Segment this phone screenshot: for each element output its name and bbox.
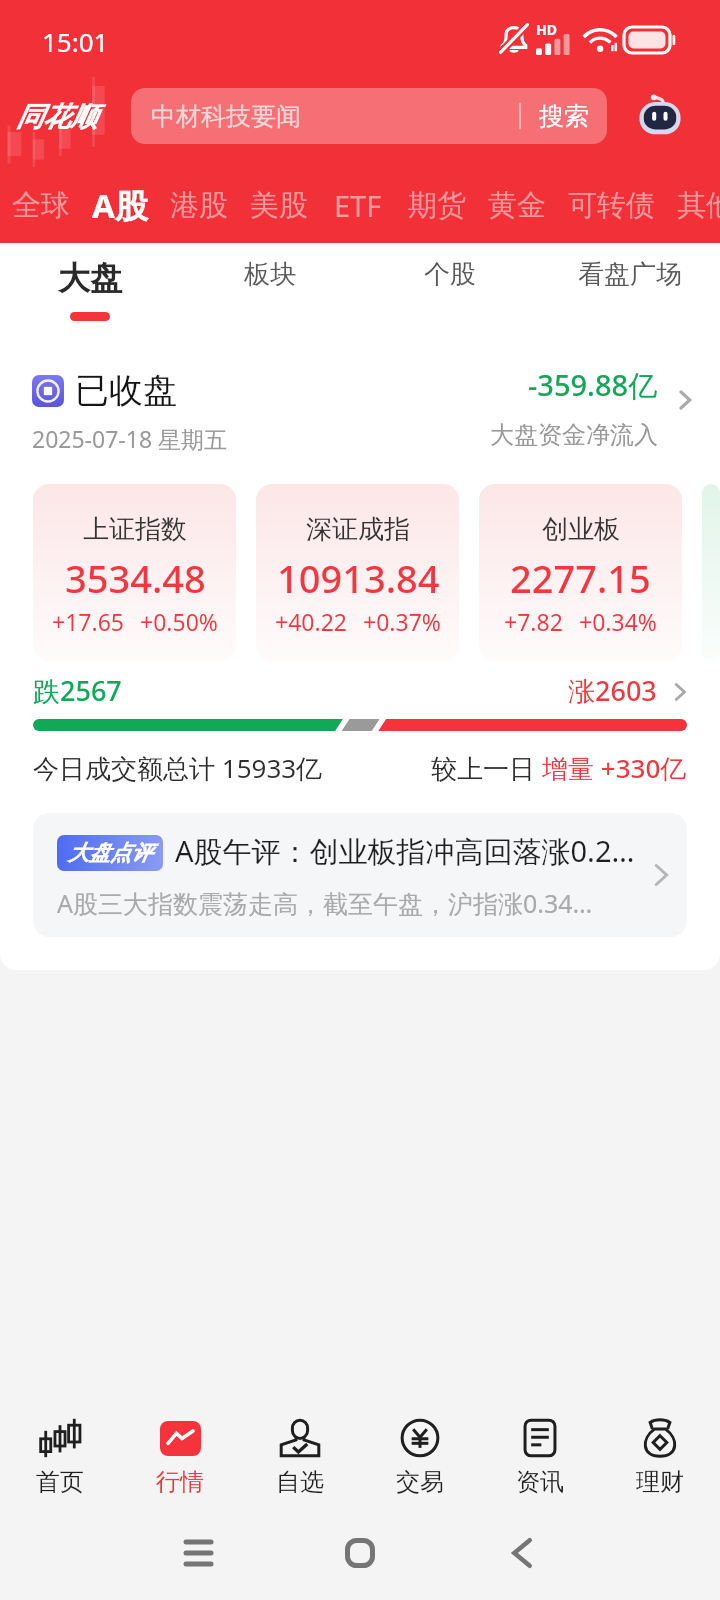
staticText: 板块: [244, 258, 296, 291]
staticText: +17.65: [52, 606, 124, 637]
staticText: 同花顺: [16, 100, 97, 134]
button[interactable]: 大盘: [0, 243, 180, 333]
staticText: 跌2567: [33, 672, 122, 709]
staticText: 中材科技要闻: [151, 101, 301, 132]
staticText: HD: [536, 20, 557, 39]
staticText: 黄金: [488, 187, 546, 224]
button[interactable]: AI助手: [632, 88, 688, 144]
button[interactable]: 首页: [0, 1380, 120, 1500]
button[interactable]: 自选: [240, 1380, 360, 1500]
staticText: 全球: [12, 187, 70, 224]
button[interactable]: 黄金: [477, 167, 557, 243]
button[interactable]: Recents: [169, 1524, 227, 1582]
staticText: 搜索: [539, 101, 589, 132]
staticText: 大盘资金净流入: [490, 420, 658, 450]
staticText: 行情: [156, 1467, 204, 1497]
staticText: 港股: [170, 187, 228, 224]
staticText: 上证指数: [83, 513, 187, 546]
staticText: 个股: [424, 258, 476, 291]
button[interactable]: 可转债: [557, 167, 666, 243]
button[interactable]: 板块: [180, 243, 360, 333]
staticText: ETF: [334, 186, 382, 225]
staticText: 交易: [396, 1467, 444, 1497]
staticText: 已收盘: [75, 369, 177, 412]
staticText: 首页: [36, 1467, 84, 1497]
staticText: -359.88亿: [528, 365, 658, 405]
button[interactable]: 已收盘: [0, 344, 720, 464]
staticText: 大盘: [58, 258, 122, 298]
staticText: A股: [92, 183, 148, 228]
button[interactable]: Home: [331, 1524, 389, 1582]
staticText: 美股: [250, 187, 308, 224]
staticText: 其他: [677, 187, 720, 224]
button[interactable]: 深证成指: [256, 484, 459, 661]
staticText: +7.82: [504, 606, 563, 637]
staticText: A股三大指数震荡走高，截至午盘，沪指涨0.34…: [57, 886, 593, 920]
button[interactable]: 个股: [360, 243, 540, 333]
button[interactable]: 理财: [600, 1380, 720, 1500]
button[interactable]: 看盘广场: [540, 243, 720, 333]
staticText: 2277.15: [510, 552, 651, 604]
button[interactable]: 同花顺: [0, 75, 120, 167]
staticText: 可转债: [568, 187, 655, 224]
staticText: 今日成交额总计 15933亿: [33, 750, 323, 786]
staticText: 理财: [636, 1467, 684, 1497]
button[interactable]: 行情: [120, 1380, 240, 1500]
staticText: 自选: [276, 1467, 324, 1497]
staticText: 创业板: [542, 513, 620, 546]
staticText: 深证成指: [306, 513, 410, 546]
staticText: 资讯: [516, 1467, 564, 1497]
button[interactable]: 交易: [360, 1380, 480, 1500]
staticText: A股午评：创业板指冲高回落涨0.2…: [175, 831, 635, 871]
button[interactable]: 美股: [239, 167, 319, 243]
button[interactable]: 资讯: [480, 1380, 600, 1500]
button[interactable]: 其他: [666, 167, 720, 243]
staticText: 期货: [408, 187, 466, 224]
button[interactable]: A股: [81, 167, 159, 243]
button[interactable]: 中材科技要闻: [131, 88, 607, 144]
staticText: 看盘广场: [578, 258, 682, 291]
button[interactable]: 跌2567: [0, 666, 720, 714]
staticText: 涨2603: [568, 672, 657, 709]
staticText: 10913.84: [277, 552, 440, 604]
staticText: 15:01: [42, 24, 109, 59]
button[interactable]: 全球: [1, 167, 81, 243]
staticText: 增量 +330亿: [542, 750, 687, 786]
button[interactable]: Back: [493, 1524, 551, 1582]
button[interactable]: 创业板: [479, 484, 682, 661]
staticText: 2025-07-18 星期五: [32, 423, 228, 454]
staticText: +40.22: [275, 606, 347, 637]
button[interactable]: 期货: [397, 167, 477, 243]
button[interactable]: 大盘点评: [33, 813, 687, 937]
button[interactable]: 港股: [159, 167, 239, 243]
button[interactable]: [702, 484, 720, 661]
staticText: 较上一日: [431, 750, 542, 786]
button[interactable]: 上证指数: [33, 484, 236, 661]
staticText: 大盘点评: [68, 840, 152, 866]
staticText: 3534.48: [65, 552, 206, 604]
staticText: +0.50%: [140, 606, 218, 637]
button[interactable]: ETF: [319, 167, 397, 243]
staticText: +0.34%: [579, 606, 657, 637]
staticText: +0.37%: [363, 606, 441, 637]
